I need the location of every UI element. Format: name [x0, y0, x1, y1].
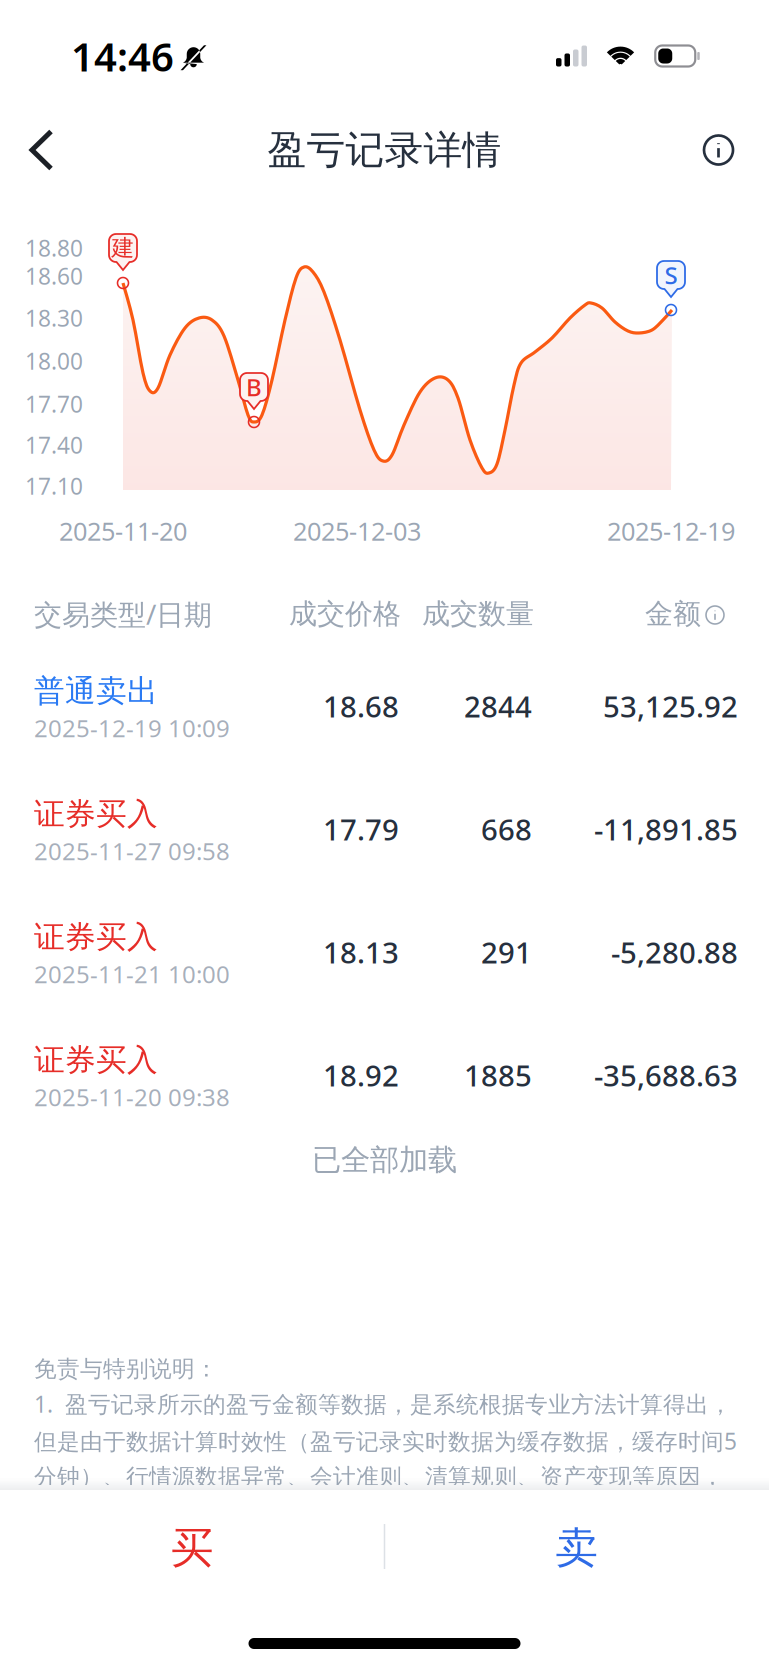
- staticText: 17.10: [25, 471, 83, 501]
- staticText: 1. 盈亏记录所示的盈亏金额等数据，是系统根据专业方法计算得出，但是由于数据计算…: [34, 1389, 737, 1526]
- staticText: 卖: [555, 1522, 598, 1574]
- button[interactable]: 买: [0, 1490, 384, 1606]
- staticText: 免责与特别说明：: [34, 1355, 218, 1383]
- staticText: 17.70: [25, 389, 83, 419]
- staticText: 2025-12-03: [293, 514, 421, 548]
- staticText: 18.80: [25, 233, 83, 263]
- staticText: 668: [481, 809, 532, 848]
- staticText: -11,891.85: [594, 809, 738, 848]
- staticText: 2025-12-19: [607, 514, 735, 548]
- staticText: 普通卖出: [34, 672, 158, 710]
- staticText: 交易类型/日期: [34, 595, 212, 633]
- button[interactable]: Information: [679, 114, 758, 185]
- staticText: 291: [481, 932, 532, 971]
- staticText: 2844: [464, 686, 532, 725]
- staticText: 2025-11-27 09:58: [34, 835, 230, 867]
- staticText: 2025-11-21 10:00: [34, 958, 230, 990]
- staticText: 建: [111, 234, 134, 262]
- staticText: 17.79: [323, 809, 399, 848]
- staticText: 17.40: [25, 430, 83, 460]
- staticText: 买: [171, 1522, 214, 1574]
- staticText: 18.60: [25, 261, 83, 291]
- staticText: -35,688.63: [594, 1055, 738, 1094]
- staticText: 金额: [645, 597, 701, 631]
- staticText: 53,125.92: [603, 686, 738, 725]
- staticText: 2025-11-20: [59, 514, 187, 548]
- staticText: 已全部加载: [312, 1142, 457, 1178]
- staticText: B: [246, 371, 262, 403]
- staticText: 18.00: [25, 346, 83, 376]
- button[interactable]: Back: [11, 111, 72, 188]
- staticText: 成交数量: [422, 597, 534, 631]
- staticText: 盈亏记录详情: [267, 126, 501, 174]
- staticText: 1885: [464, 1055, 532, 1094]
- staticText: 18.92: [323, 1055, 399, 1094]
- staticText: 证券买入: [34, 795, 158, 833]
- staticText: 14:46: [71, 29, 174, 82]
- staticText: 证券买入: [34, 918, 158, 956]
- staticText: 18.13: [323, 932, 399, 971]
- staticText: 2025-12-19 10:09: [34, 712, 230, 744]
- staticText: -5,280.88: [611, 932, 738, 971]
- staticText: 证券买入: [34, 1041, 158, 1079]
- staticText: S: [664, 259, 677, 291]
- button[interactable]: 卖: [384, 1490, 769, 1606]
- button[interactable]: 金额: [525, 597, 725, 631]
- staticText: 18.68: [323, 686, 399, 725]
- staticText: 2025-11-20 09:38: [34, 1081, 230, 1113]
- staticText: 18.30: [25, 303, 83, 333]
- staticText: 成交价格: [289, 597, 401, 631]
